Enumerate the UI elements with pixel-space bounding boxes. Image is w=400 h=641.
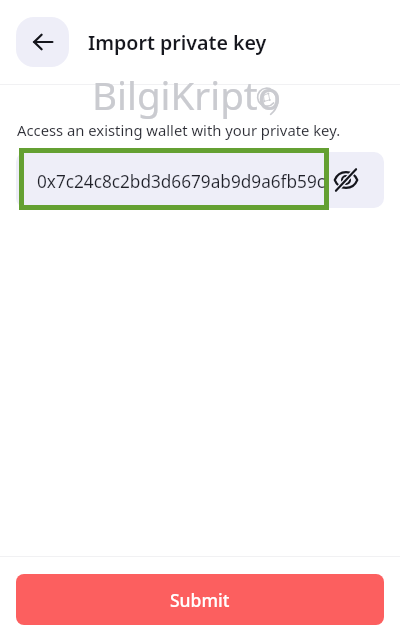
staticText: Access an existing wallet with your priv… xyxy=(17,120,341,140)
button[interactable]: Submit xyxy=(16,574,384,625)
button[interactable]: 0x7c24c8c2bd3d6679ab9d9a6fb59c xyxy=(24,153,324,205)
staticText: Submit xyxy=(170,588,230,612)
button[interactable]: Show private key xyxy=(329,152,384,208)
staticText: 0x7c24c8c2bd3d6679ab9d9a6fb59c xyxy=(37,170,326,193)
button[interactable]: Back xyxy=(16,17,69,67)
staticText: BilgiKripto xyxy=(92,69,282,121)
staticText: Import private key xyxy=(88,29,267,56)
